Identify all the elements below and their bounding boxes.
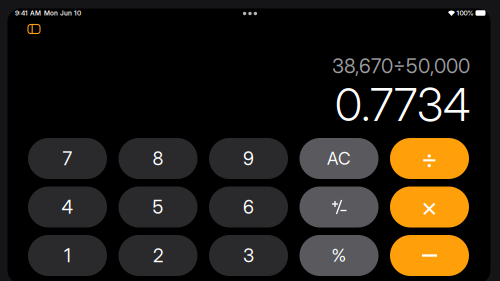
staticText: 5 (152, 196, 163, 218)
staticText: 8 (152, 147, 163, 170)
button[interactable]: Plus Minus (299, 186, 378, 227)
staticText: ÷ (421, 142, 438, 175)
button[interactable]: 4 (28, 186, 107, 227)
staticText: 1 (64, 244, 71, 267)
staticText: Mon Jun 10 (44, 9, 81, 17)
button[interactable]: 9 (209, 138, 288, 179)
button[interactable]: 7 (28, 138, 107, 179)
staticText: 7 (62, 147, 72, 170)
button[interactable]: 2 (118, 235, 197, 276)
staticText: 0.7734 (335, 77, 470, 132)
staticText: 6 (243, 196, 254, 218)
staticText: 9 (243, 147, 254, 170)
staticText: 100% (456, 9, 473, 17)
button[interactable]: 5 (118, 186, 197, 227)
staticText: % (331, 245, 346, 266)
button[interactable]: % (299, 235, 378, 276)
staticText: 38,670÷50,000 (332, 54, 470, 78)
staticText: 3 (243, 244, 254, 267)
button[interactable]: 3 (209, 235, 288, 276)
button[interactable]: 6 (209, 186, 288, 227)
button[interactable]: 1 (28, 235, 107, 276)
button[interactable]: Show Sidebar (25, 22, 43, 36)
staticText: 4 (61, 196, 73, 218)
button[interactable]: Minus (390, 235, 469, 276)
staticText: 9:41 AM (15, 9, 41, 17)
button[interactable]: 8 (118, 138, 197, 179)
staticText: AC (327, 148, 351, 169)
button[interactable]: AC (299, 138, 378, 179)
staticText: × (421, 191, 438, 223)
button[interactable]: × (390, 186, 469, 227)
staticText: 2 (153, 244, 163, 267)
button[interactable]: ÷ (390, 138, 469, 179)
